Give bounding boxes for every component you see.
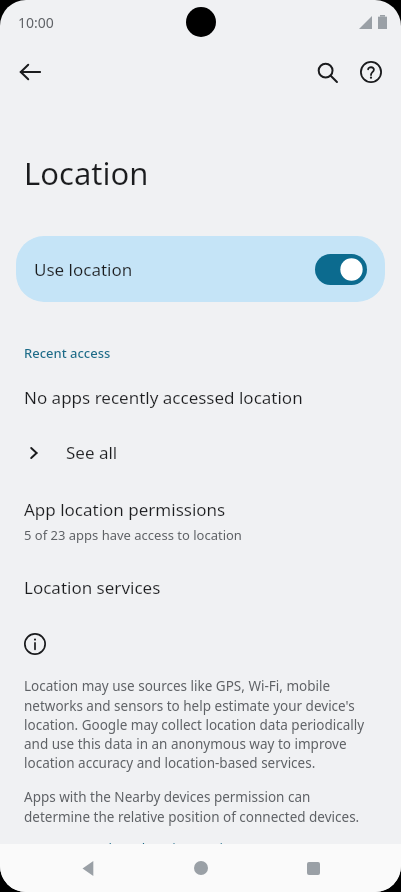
staticText: Location may use sources like GPS, Wi-Fi… — [24, 677, 377, 772]
button[interactable]: Recents — [289, 844, 337, 892]
button[interactable]: Use location — [16, 236, 385, 302]
button[interactable]: Search — [305, 50, 349, 94]
button[interactable]: See all — [0, 437, 401, 468]
staticText: Use location — [34, 258, 315, 281]
staticText: Location — [24, 152, 149, 194]
button[interactable]: Location services — [0, 576, 161, 599]
staticText: App location permissions — [24, 498, 226, 521]
button[interactable]: Back — [8, 50, 52, 94]
staticText: See all — [66, 441, 118, 464]
button[interactable]: Back — [64, 844, 112, 892]
button[interactable]: App location permissions — [0, 498, 401, 544]
staticText: Recent access — [24, 344, 111, 362]
staticText: 10:00 — [18, 13, 54, 32]
staticText: Apps with the Nearby devices permission … — [24, 788, 377, 826]
button[interactable]: Learn more about location settings. — [0, 840, 274, 844]
staticText: 5 of 23 apps have access to location — [24, 526, 242, 544]
staticText: No apps recently accessed location — [24, 386, 303, 409]
button[interactable]: Home — [177, 844, 225, 892]
button[interactable]: Help — [349, 50, 393, 94]
